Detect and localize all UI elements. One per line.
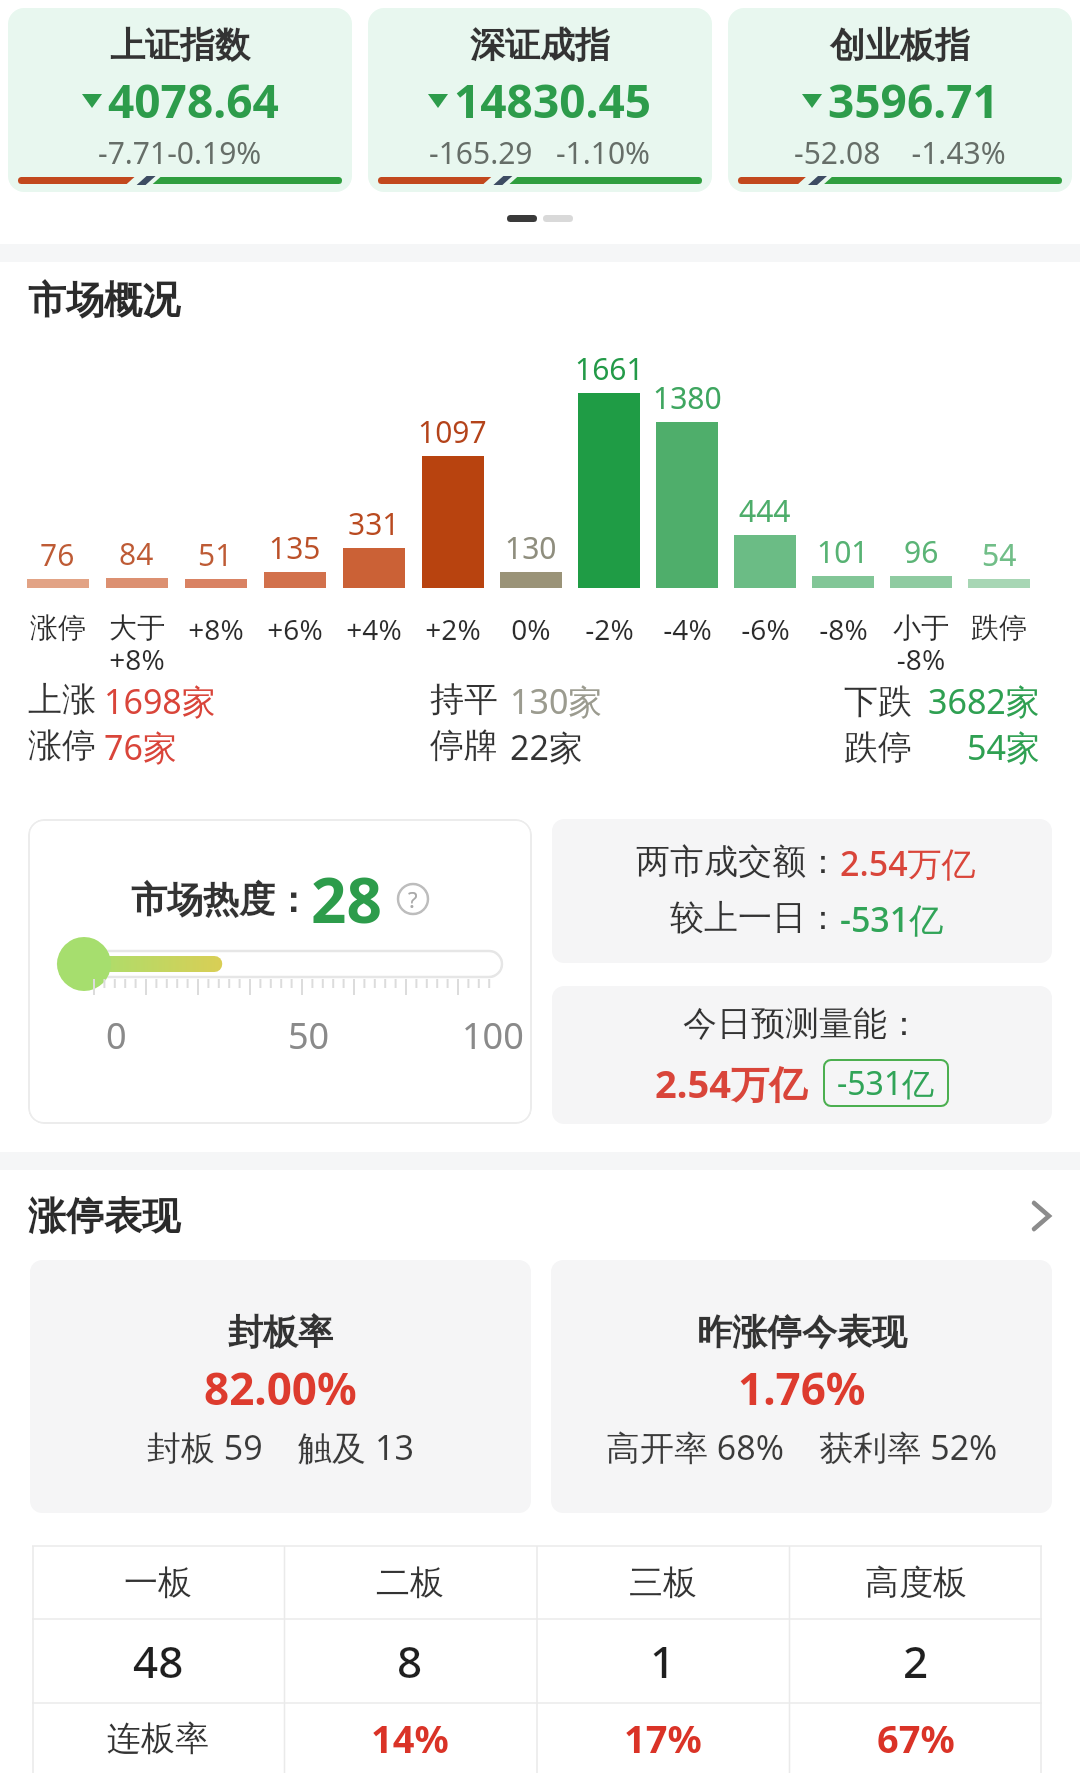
staticText: 331 — [348, 503, 400, 544]
staticText: +4% — [346, 610, 402, 648]
staticText: -52.08 -1.43% — [794, 132, 1006, 173]
staticText: 1698家 — [104, 678, 216, 724]
button[interactable]: 两市成交额： — [552, 819, 1052, 963]
staticText: 54家 — [967, 724, 1040, 770]
staticText: 67% — [877, 1712, 955, 1764]
staticText: 涨停 — [28, 724, 96, 767]
button[interactable]: 涨停表现 — [28, 1192, 1052, 1240]
button[interactable]: 创业板指 — [728, 8, 1072, 192]
staticText: 封板 59 触及 13 — [147, 1424, 414, 1470]
staticText: 48 — [133, 1631, 184, 1691]
staticText: 三板 — [629, 1561, 697, 1604]
staticText: 3596.71 — [828, 69, 999, 132]
staticText: 130 — [505, 527, 557, 568]
staticText: 84 — [119, 533, 154, 574]
staticText: 涨停表现 — [28, 1192, 180, 1240]
staticText: 市场热度： — [131, 877, 311, 922]
staticText: 2.54万亿 — [840, 840, 976, 886]
staticText: 0% — [511, 610, 551, 648]
staticText: 小于 -8% — [893, 610, 949, 678]
staticText: 2 — [903, 1631, 929, 1691]
staticText: 较上一日： — [670, 896, 840, 939]
staticText: 持平 — [430, 678, 498, 721]
staticText: 51 — [198, 534, 233, 575]
staticText: 8 — [397, 1631, 423, 1691]
button[interactable]: 昨涨停今表现 — [551, 1260, 1052, 1513]
staticText: 封板率 — [228, 1310, 333, 1354]
staticText: 100 — [462, 1011, 524, 1060]
staticText: 50 — [288, 1011, 330, 1060]
staticText: -531亿 — [837, 1061, 935, 1105]
button[interactable]: 深证成指 — [368, 8, 712, 192]
staticText: 96 — [904, 531, 939, 572]
staticText: 跌停 — [844, 726, 912, 769]
staticText: 2.54万亿 — [655, 1057, 807, 1109]
staticText: 一板 — [124, 1561, 192, 1604]
staticText: 101 — [817, 531, 869, 572]
staticText: 创业板指 — [830, 23, 970, 67]
staticText: 1097 — [418, 411, 487, 452]
staticText: 3682家 — [928, 678, 1040, 724]
staticText: 上涨 — [28, 678, 96, 721]
staticText: 1380 — [653, 377, 722, 418]
staticText: 54 — [982, 534, 1017, 575]
staticText: 连板率 — [107, 1717, 209, 1760]
staticText: 市场概况 — [28, 276, 180, 324]
staticText: 28 — [311, 857, 382, 941]
staticText: 高度板 — [865, 1561, 967, 1604]
staticText: 两市成交额： — [636, 840, 840, 883]
staticText: 4078.64 — [108, 69, 279, 132]
button[interactable]: 封板率 — [30, 1260, 531, 1513]
staticText: +2% — [425, 610, 481, 648]
staticText: 130家 — [510, 678, 603, 724]
staticText: 135 — [269, 527, 321, 568]
staticText: 1 — [650, 1631, 676, 1691]
staticText: +8% — [188, 610, 244, 648]
staticText: 二板 — [376, 1561, 444, 1604]
staticText: -531亿 — [840, 896, 944, 942]
staticText: 1.76% — [738, 1358, 866, 1418]
staticText: 17% — [624, 1712, 702, 1764]
staticText: 14830.45 — [454, 69, 652, 132]
staticText: 14% — [371, 1712, 449, 1764]
staticText: 停牌 — [430, 724, 498, 767]
staticText: 444 — [739, 490, 791, 531]
staticText: 76家 — [104, 724, 177, 770]
staticText: 82.00% — [204, 1358, 357, 1418]
staticText: 今日预测量能： — [683, 1002, 921, 1045]
staticText: -6% — [741, 610, 790, 648]
staticText: 76 — [40, 534, 75, 575]
staticText: 1661 — [575, 348, 644, 389]
staticText: -8% — [819, 610, 868, 648]
button[interactable]: 市场热度： — [28, 819, 532, 1124]
staticText: 0 — [106, 1011, 127, 1060]
staticText: -165.29 -1.10% — [429, 132, 651, 173]
staticText: 深证成指 — [470, 23, 610, 67]
staticText: -2% — [585, 610, 634, 648]
staticText: 高开率 68% 获利率 52% — [606, 1424, 998, 1470]
staticText: 昨涨停今表现 — [697, 1310, 907, 1354]
button[interactable]: 上证指数 — [8, 8, 352, 192]
staticText: +6% — [267, 610, 323, 648]
staticText: 22家 — [510, 724, 583, 770]
staticText: 涨停 — [30, 610, 86, 645]
staticText: -4% — [663, 610, 712, 648]
staticText: ? — [408, 884, 418, 914]
staticText: 上证指数 — [110, 23, 250, 67]
staticText: -7.71-0.19% — [98, 132, 262, 173]
button[interactable]: 今日预测量能： — [552, 986, 1052, 1124]
staticText: 大于 +8% — [109, 610, 165, 678]
staticText: 跌停 — [971, 610, 1027, 645]
staticText: 下跌 — [844, 680, 912, 723]
